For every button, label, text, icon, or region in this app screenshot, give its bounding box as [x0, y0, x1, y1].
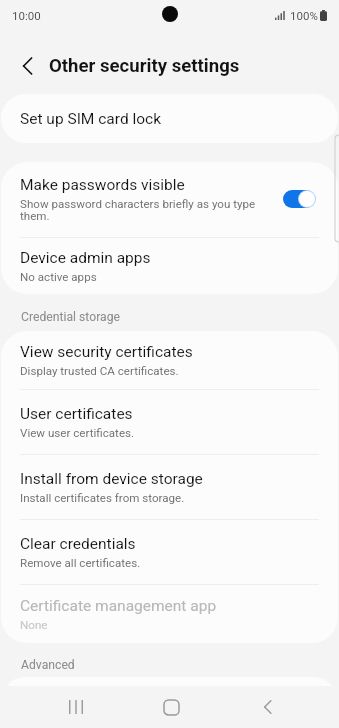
staticText: Device admin apps: [20, 249, 151, 267]
button[interactable]: Recents: [48, 686, 104, 728]
button[interactable]: Device admin apps: [1, 238, 338, 294]
button[interactable]: User certificates: [1, 390, 338, 454]
button[interactable]: Trust agents: [1, 677, 338, 726]
staticText: View user certificates.: [20, 426, 135, 440]
button[interactable]: View security certificates: [1, 331, 338, 389]
staticText: Clear credentials: [20, 535, 136, 553]
staticText: Install certificates from storage.: [20, 491, 185, 505]
staticText: No active apps: [20, 270, 97, 284]
staticText: Set up SIM card lock: [20, 110, 162, 128]
staticText: Show password characters briefly as you …: [20, 197, 275, 223]
button[interactable]: Home: [143, 686, 199, 728]
staticText: 10:00: [12, 9, 41, 22]
staticText: Advanced: [21, 658, 75, 672]
staticText: Other security settings: [49, 55, 240, 77]
staticText: Certificate management app: [20, 597, 217, 615]
button[interactable]: Navigate up: [4, 43, 50, 89]
staticText: Remove all certificates.: [20, 556, 141, 570]
staticText: View security certificates: [20, 343, 193, 361]
button[interactable]: Install from device storage: [1, 455, 338, 519]
staticText: Install from device storage: [20, 470, 203, 488]
button[interactable]: Clear credentials: [1, 520, 338, 584]
staticText: Make passwords visible: [20, 176, 185, 194]
staticText: 100%: [290, 9, 318, 22]
button[interactable]: Certificate management app: [1, 585, 338, 643]
staticText: Trust agents: [20, 693, 107, 711]
staticText: User certificates: [20, 405, 133, 423]
button[interactable]: Make passwords visible: [1, 162, 338, 237]
staticText: Credential storage: [21, 310, 120, 324]
button[interactable]: Set up SIM card lock: [1, 94, 338, 143]
staticText: Display trusted CA certificates.: [20, 364, 179, 378]
button[interactable]: [283, 190, 316, 208]
staticText: None: [20, 618, 48, 632]
button[interactable]: Back: [238, 686, 294, 728]
